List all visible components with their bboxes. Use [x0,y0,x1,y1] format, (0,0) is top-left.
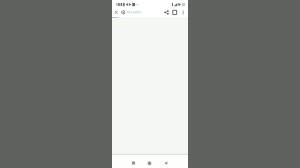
button[interactable]: Back [159,157,172,168]
button[interactable]: Share [162,8,170,16]
button[interactable]: Site information and address [121,8,157,16]
staticText: docs.google.com [127,11,143,14]
button[interactable]: Recent apps [127,156,140,168]
button[interactable]: More options [180,8,186,16]
button[interactable]: Close tab [112,8,120,16]
button[interactable]: Home [143,157,156,168]
button[interactable]: Open in browser [171,8,179,16]
